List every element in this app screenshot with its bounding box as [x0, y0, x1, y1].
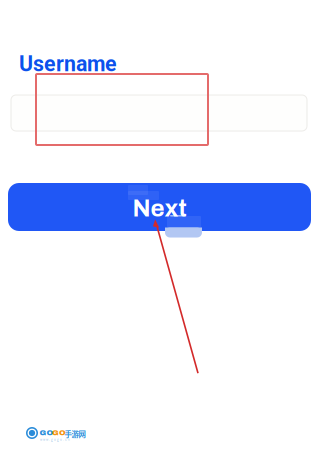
staticText: w w w . g o g o . c n [40, 438, 70, 441]
staticText: Username [19, 51, 117, 76]
staticText: GO [52, 428, 66, 437]
button[interactable]: Next [8, 183, 311, 231]
staticText: GO [39, 428, 53, 437]
staticText: 手游网 [64, 429, 85, 439]
staticText: Next [132, 195, 186, 221]
